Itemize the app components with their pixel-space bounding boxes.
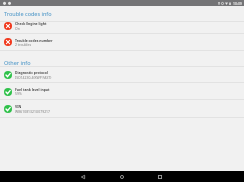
staticText: 59% xyxy=(15,91,22,96)
staticText: VIN xyxy=(15,104,22,109)
staticText: 2 troubles xyxy=(15,42,32,47)
staticText: ISO14230-4(KWP FAST) xyxy=(15,75,52,80)
button[interactable]: VIN xyxy=(0,99,244,117)
button[interactable]: Check Engine light xyxy=(0,21,244,34)
staticText: Check Engine light xyxy=(15,21,47,26)
staticText: WB61081321U079217 xyxy=(15,109,50,114)
button[interactable]: Diagnostic protocol xyxy=(0,66,244,82)
button[interactable]: Recents xyxy=(149,171,171,182)
button[interactable]: Trouble codes number xyxy=(0,33,244,50)
staticText: Diagnostic protocol xyxy=(15,70,48,75)
staticText: 10:39 xyxy=(233,1,242,6)
button[interactable]: Fuel tank level input xyxy=(0,82,244,99)
staticText: Other info xyxy=(4,59,31,66)
button[interactable]: Back xyxy=(72,171,94,182)
staticText: On xyxy=(15,26,20,31)
staticText: Fuel tank level input xyxy=(15,87,50,92)
button[interactable]: Home xyxy=(111,171,133,182)
staticText: Trouble codes info xyxy=(4,10,52,17)
staticText: Trouble codes number xyxy=(15,38,53,43)
